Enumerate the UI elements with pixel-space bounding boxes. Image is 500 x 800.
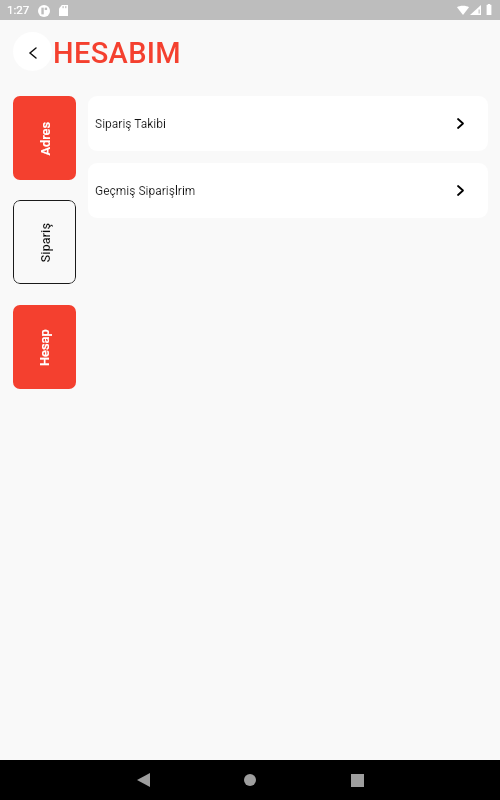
staticText: Geçmiş Siparişlrim — [95, 184, 196, 198]
staticText: 1:27 — [7, 3, 30, 16]
button[interactable]: Sipariş — [13, 200, 76, 284]
button[interactable]: Hesap — [13, 305, 76, 389]
button[interactable]: Recent apps — [337, 760, 377, 800]
button[interactable]: Geçmiş Siparişlrim — [88, 163, 488, 218]
button[interactable]: Sipariş Takibi — [88, 96, 488, 151]
staticText: Sipariş Takibi — [95, 117, 166, 131]
staticText: Sipariş — [37, 222, 52, 262]
button[interactable]: Back — [123, 760, 163, 800]
staticText: Hesap — [37, 329, 52, 366]
button[interactable]: Home — [230, 760, 270, 800]
staticText: Adres — [37, 121, 52, 155]
staticText: HESABIM — [53, 36, 182, 70]
button[interactable]: Adres — [13, 96, 76, 180]
button[interactable]: Back — [13, 32, 52, 71]
